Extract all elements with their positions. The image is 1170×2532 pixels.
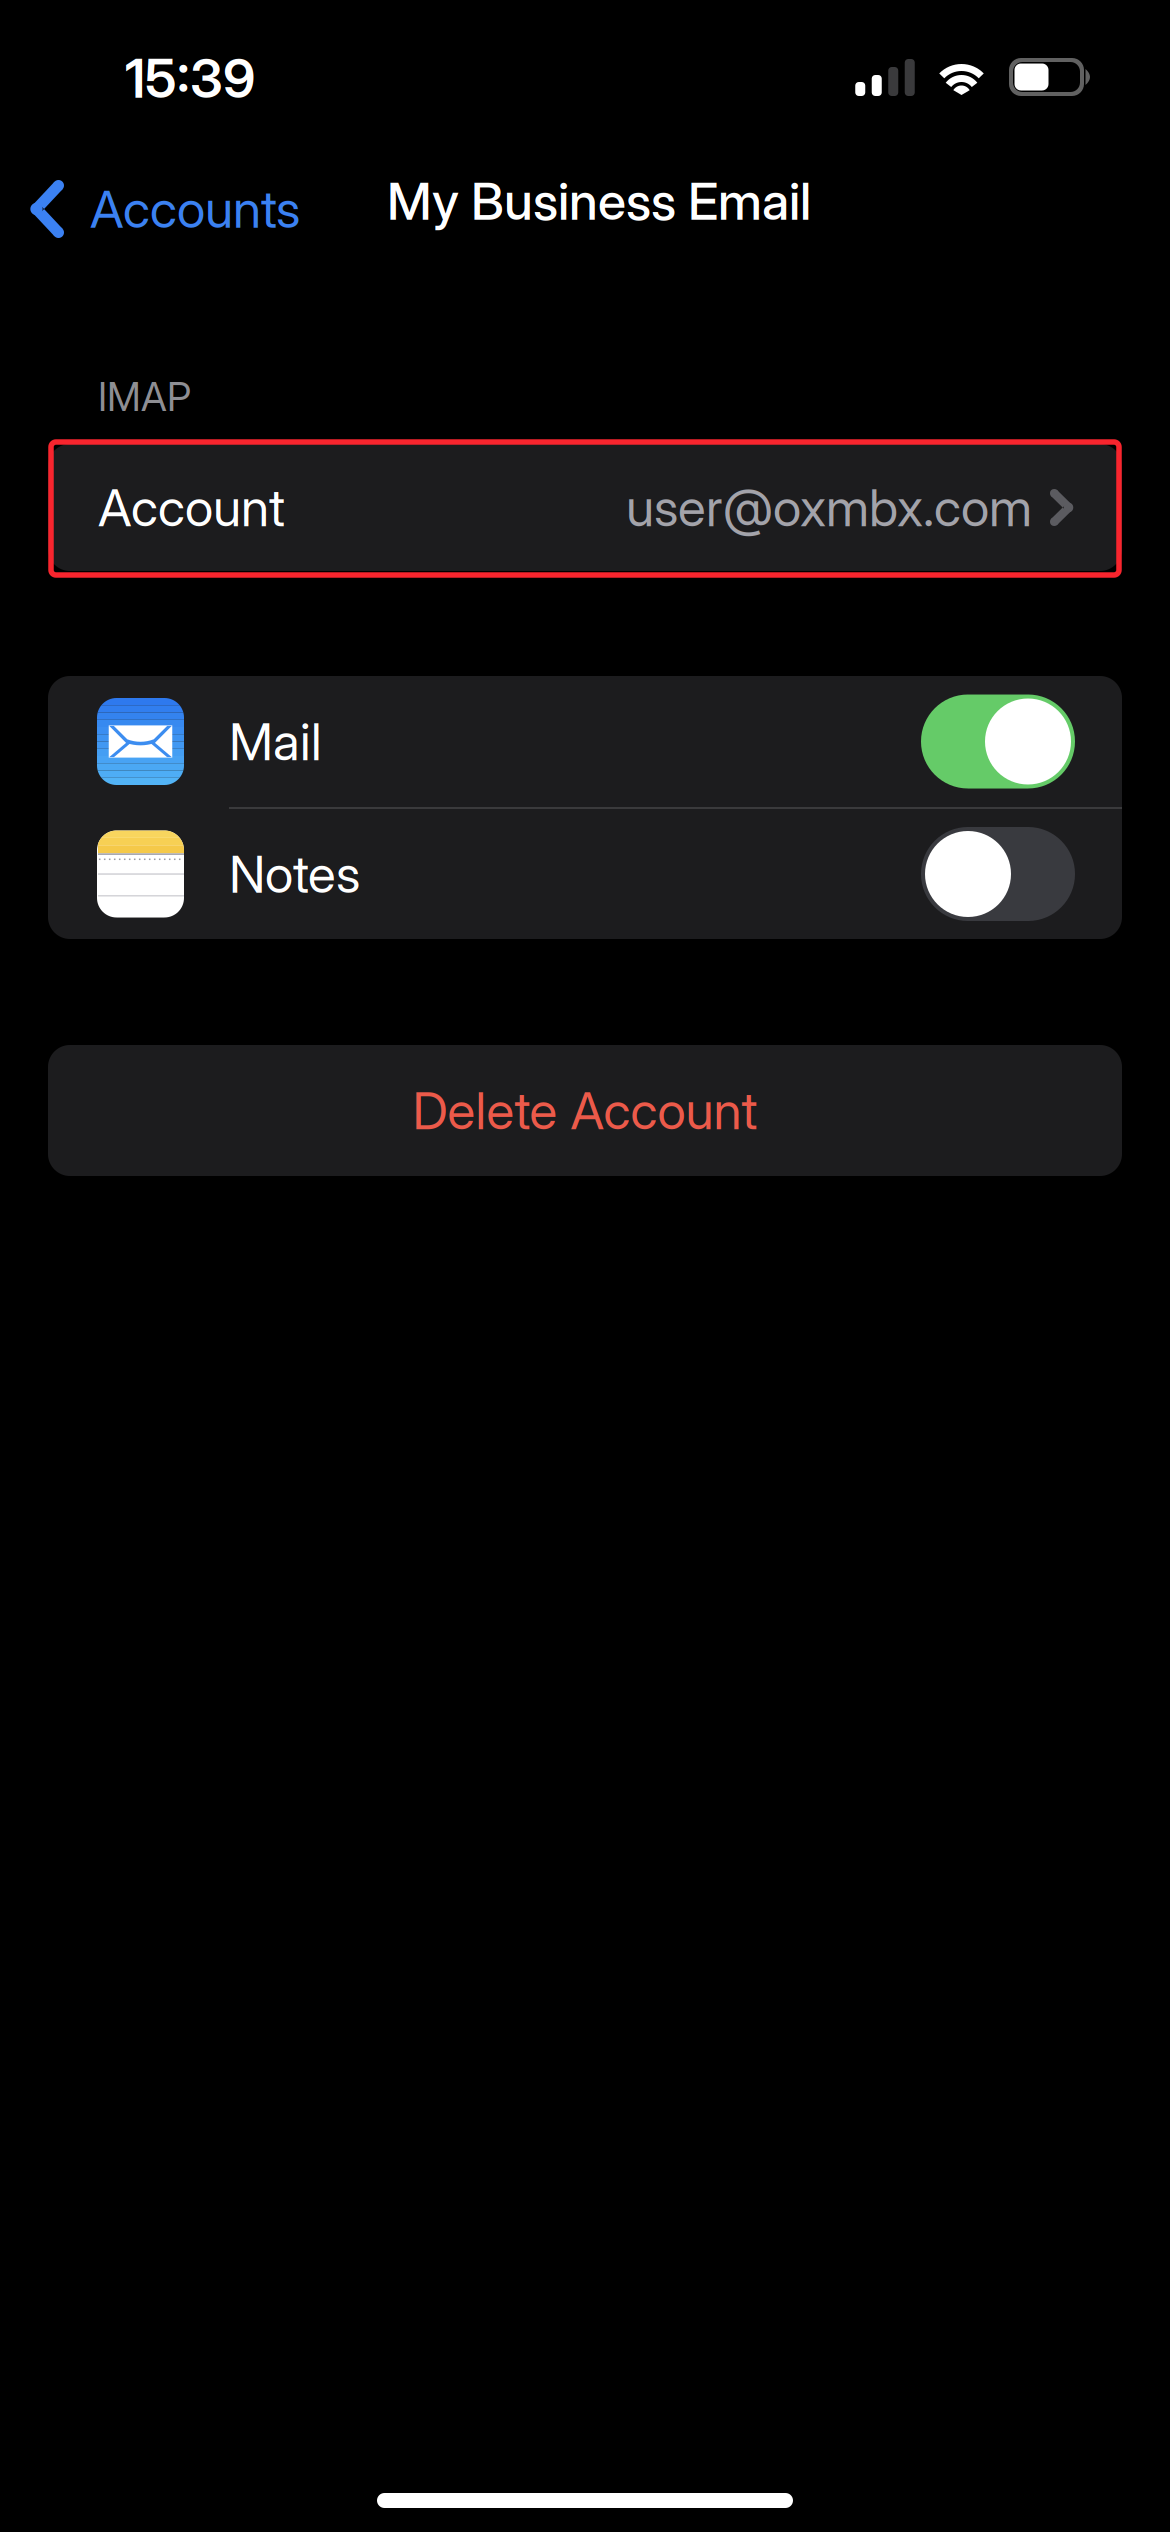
staticText: My Business Email: [387, 170, 811, 232]
staticText: Account: [98, 476, 285, 538]
staticText: Notes: [229, 843, 360, 905]
button[interactable]: Mail: [48, 676, 1122, 807]
staticText: Accounts: [90, 178, 300, 240]
staticText: IMAP: [98, 373, 191, 421]
staticText: 15:39: [125, 46, 255, 110]
button[interactable]: Accounts: [31, 178, 300, 240]
staticText: Mail: [229, 710, 322, 772]
button[interactable]: Account: [48, 444, 1122, 571]
staticText: user@oxmbx.com: [626, 476, 1032, 538]
button[interactable]: Notes: [48, 809, 1122, 939]
staticText: Delete Account: [412, 1079, 757, 1141]
button[interactable]: Delete Account: [48, 1045, 1122, 1176]
